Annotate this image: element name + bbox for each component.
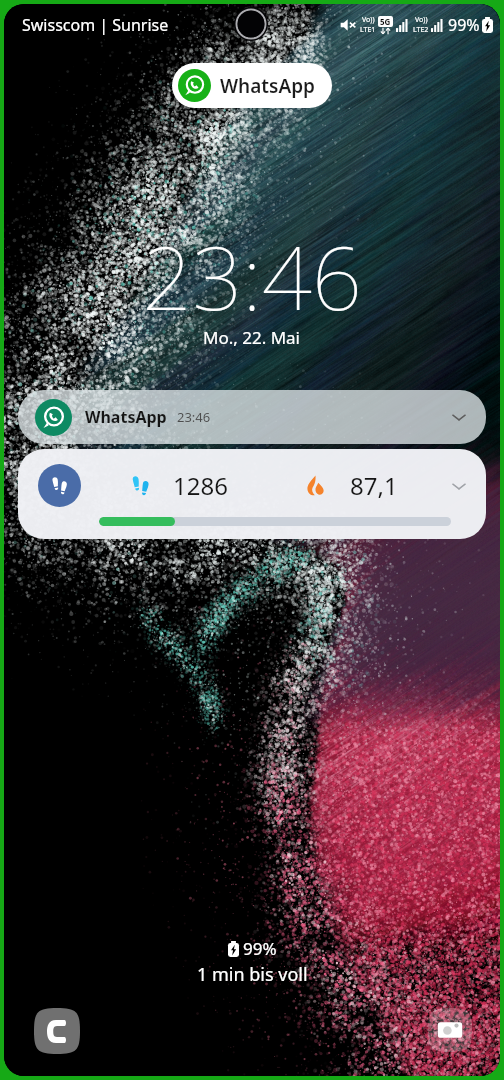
staticText: Mo., 22. Mai	[203, 326, 301, 349]
staticText: 99%	[448, 14, 480, 36]
staticText: Vo))	[415, 15, 428, 25]
staticText: Swisscom | Sunrise	[22, 14, 169, 36]
staticText: 1 min bis voll	[197, 962, 308, 987]
staticText: 87,1	[350, 469, 398, 502]
button[interactable]: Phone	[34, 1008, 80, 1054]
staticText: LTE1	[360, 25, 376, 35]
button[interactable]: Camera	[428, 1008, 472, 1052]
staticText: Vo))	[362, 15, 375, 25]
button[interactable]: WhatsApp	[172, 63, 332, 108]
staticText: WhatsApp	[85, 406, 167, 428]
staticText: 5G	[380, 16, 391, 27]
staticText: 99%	[243, 937, 277, 960]
staticText: 1286	[173, 469, 228, 502]
staticText: 23:46	[177, 408, 211, 426]
button[interactable]: 1286	[18, 449, 486, 539]
staticText: 23:46	[142, 216, 363, 336]
staticText: WhatsApp	[220, 73, 315, 99]
staticText: LTE2	[413, 25, 429, 35]
button[interactable]: WhatsApp	[18, 390, 486, 444]
